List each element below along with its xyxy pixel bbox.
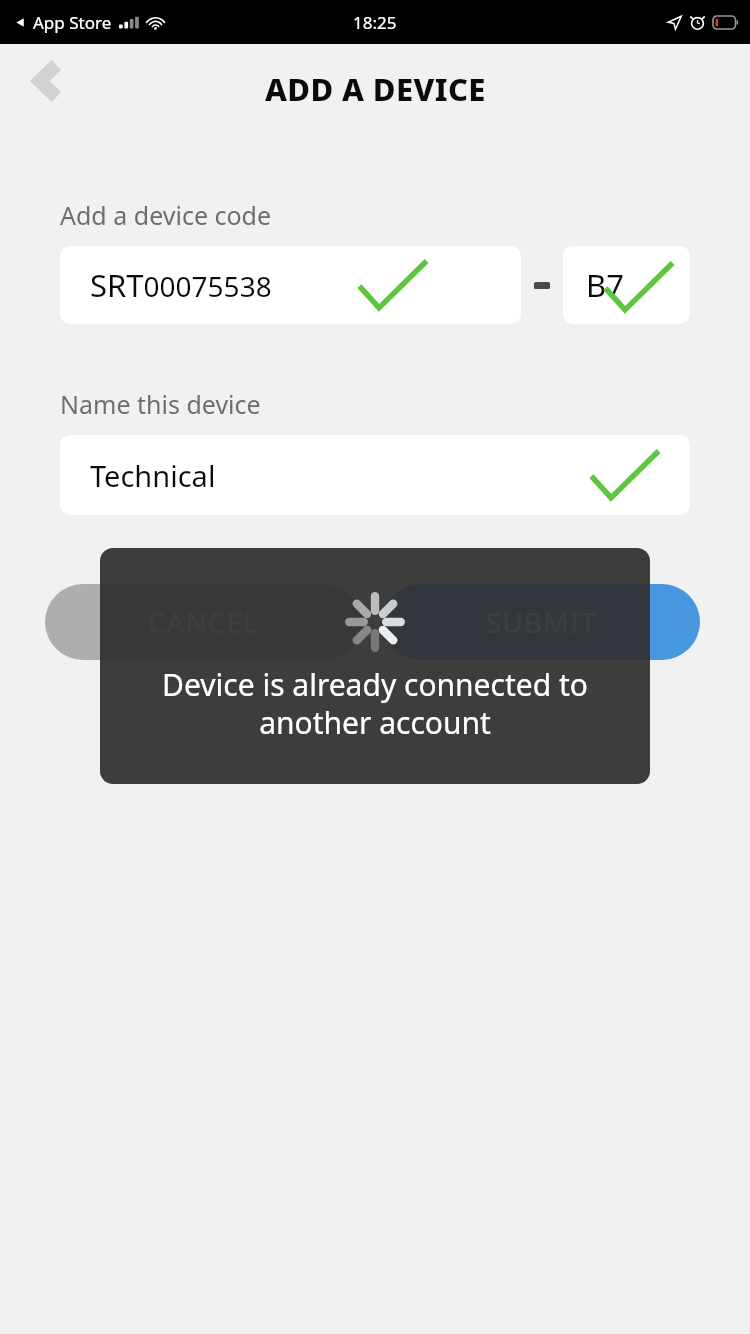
staticText: ADD A DEVICE bbox=[265, 68, 486, 110]
button[interactable]: Back bbox=[18, 51, 78, 111]
staticText: 18:25 bbox=[353, 11, 397, 34]
button[interactable]: SUBMIT bbox=[382, 584, 700, 660]
staticText: Technical bbox=[90, 456, 216, 495]
button[interactable]: CANCEL bbox=[45, 584, 362, 660]
staticText: Device is already connected to another a… bbox=[100, 664, 650, 743]
button[interactable]: Technical bbox=[60, 435, 690, 515]
staticText: App Store bbox=[33, 11, 112, 34]
button[interactable]: SRT00075538 bbox=[60, 246, 521, 324]
staticText: SRT00075538 bbox=[90, 264, 272, 306]
staticText: SUBMIT bbox=[486, 603, 597, 641]
staticText: B7 bbox=[586, 264, 624, 306]
staticText: Name this device bbox=[60, 387, 261, 421]
staticText: Add a device code bbox=[60, 198, 272, 232]
button[interactable]: B7 bbox=[563, 246, 690, 324]
